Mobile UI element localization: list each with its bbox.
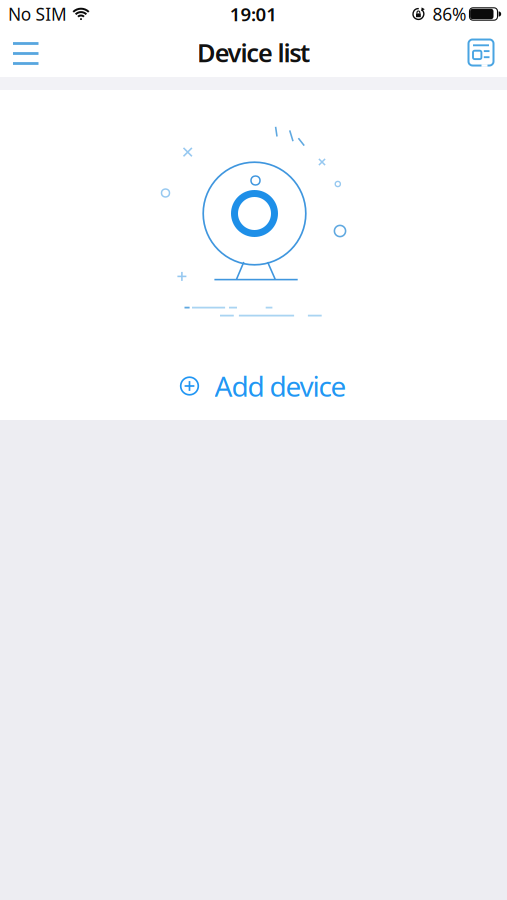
staticText: Add device bbox=[214, 367, 346, 405]
button[interactable]: Add device bbox=[179, 367, 346, 405]
button[interactable]: Device layout bbox=[468, 39, 494, 66]
staticText: No SIM bbox=[8, 2, 67, 25]
staticText: 86% bbox=[432, 2, 466, 25]
staticText: 19:01 bbox=[230, 2, 277, 26]
button[interactable]: Menu bbox=[13, 37, 39, 67]
staticText: Device list bbox=[197, 36, 310, 69]
